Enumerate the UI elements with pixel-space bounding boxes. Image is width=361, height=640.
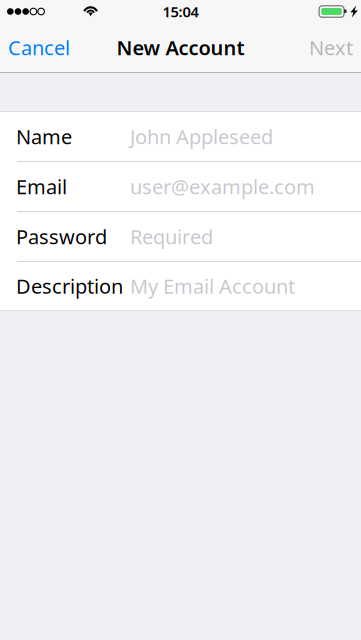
staticText: My Email Account	[130, 273, 295, 299]
staticText: Cancel	[8, 34, 70, 61]
button[interactable]: Next	[300, 23, 361, 72]
staticText: Description	[16, 273, 123, 299]
staticText: Name	[16, 123, 72, 150]
button[interactable]: Email	[0, 162, 361, 212]
staticText: Email	[16, 173, 67, 200]
staticText: John Appleseed	[130, 123, 273, 150]
staticText: Required	[130, 223, 213, 250]
button[interactable]: Description	[0, 262, 361, 310]
staticText: New Account	[116, 34, 244, 61]
staticText: 15:04	[162, 2, 198, 21]
staticText: Next	[309, 34, 353, 61]
button[interactable]: Cancel	[0, 23, 79, 72]
button[interactable]: Name	[0, 112, 361, 162]
staticText: user@example.com	[130, 173, 315, 200]
staticText: Password	[16, 223, 107, 250]
button[interactable]: Password	[0, 212, 361, 262]
